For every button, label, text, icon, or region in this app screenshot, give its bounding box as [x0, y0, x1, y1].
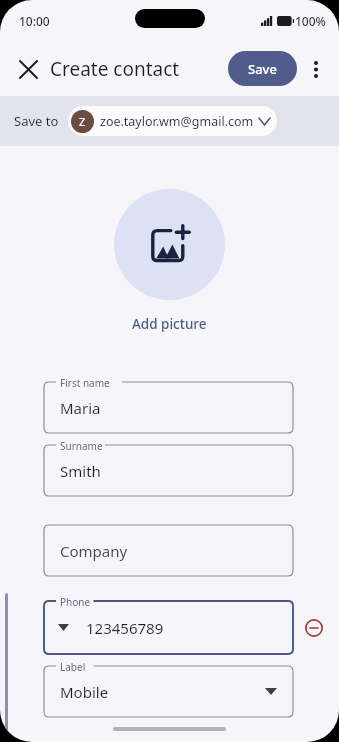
- staticText: Label: [60, 660, 86, 674]
- button[interactable]: Remove phone: [299, 613, 329, 643]
- staticText: Surname: [60, 439, 103, 453]
- staticText: Z: [79, 114, 86, 129]
- staticText: 100%: [295, 13, 326, 29]
- button[interactable]: 123456789: [44, 601, 293, 654]
- button[interactable]: Save: [228, 51, 297, 86]
- button[interactable]: More options: [297, 50, 335, 88]
- button[interactable]: Maria: [44, 382, 293, 433]
- button[interactable]: Z: [68, 106, 277, 136]
- staticText: Company: [60, 541, 128, 561]
- staticText: Add picture: [132, 315, 207, 333]
- staticText: Create contact: [50, 56, 180, 82]
- button[interactable]: Mobile: [44, 666, 293, 717]
- button[interactable]: Add picture: [126, 313, 213, 335]
- button[interactable]: Company: [44, 525, 293, 576]
- staticText: Phone: [60, 595, 91, 609]
- button[interactable]: Close: [8, 49, 48, 89]
- button[interactable]: Add picture: [114, 189, 225, 300]
- staticText: Mobile: [60, 682, 109, 702]
- staticText: zoe.taylor.wm@gmail.com: [100, 113, 254, 130]
- staticText: 10:00: [19, 13, 50, 29]
- staticText: Save: [248, 60, 277, 78]
- button[interactable]: Smith: [44, 445, 293, 496]
- staticText: 123456789: [86, 618, 164, 638]
- staticText: First name: [60, 376, 110, 390]
- staticText: Save to: [14, 112, 59, 130]
- staticText: Maria: [60, 398, 101, 418]
- staticText: Smith: [60, 461, 101, 481]
